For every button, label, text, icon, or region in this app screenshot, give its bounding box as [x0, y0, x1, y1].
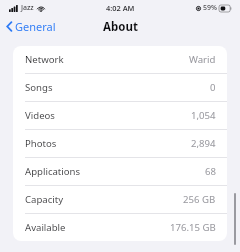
staticText: Network — [25, 53, 64, 66]
staticText: Available — [25, 221, 66, 234]
staticText: About — [103, 19, 138, 35]
button[interactable]: Photos — [13, 130, 227, 157]
staticText: 59% — [203, 3, 217, 13]
staticText: 1,054 — [191, 109, 216, 122]
button[interactable]: Applications — [13, 158, 227, 185]
button[interactable]: Videos — [13, 102, 227, 129]
staticText: Videos — [25, 109, 55, 122]
button[interactable]: Capacity — [13, 186, 227, 213]
staticText: 176.15 GB — [170, 221, 216, 234]
staticText: General — [15, 19, 56, 34]
staticText: 256 GB — [183, 193, 216, 206]
button[interactable]: Songs — [13, 74, 227, 101]
button[interactable]: General — [0, 17, 62, 36]
staticText: Applications — [25, 165, 81, 178]
staticText: 68 — [205, 165, 216, 178]
staticText: Warid — [189, 53, 216, 66]
button[interactable]: Available — [13, 214, 227, 241]
staticText: Photos — [25, 137, 57, 150]
staticText: Jazz — [21, 3, 34, 13]
staticText: 0 — [210, 81, 216, 94]
button[interactable]: Network — [13, 46, 227, 73]
staticText: 4:02 AM — [106, 3, 135, 13]
staticText: Songs — [25, 81, 53, 94]
staticText: Capacity — [25, 193, 64, 206]
staticText: 2,894 — [191, 137, 216, 150]
